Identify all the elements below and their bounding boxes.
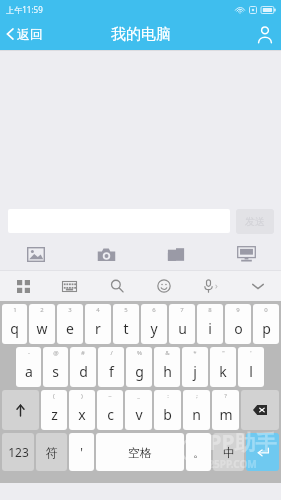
button[interactable]: ' [69, 433, 94, 471]
button[interactable]: Gallery [0, 238, 71, 270]
button[interactable]: & [154, 347, 180, 387]
button[interactable]: 5 [113, 304, 139, 344]
staticText: ) [81, 392, 83, 400]
button[interactable]: ) [69, 390, 95, 430]
staticText: 空格 [128, 445, 152, 460]
button[interactable]: 发送 [236, 209, 274, 234]
button[interactable]: Emoji [140, 271, 187, 301]
button[interactable]: Camera [71, 238, 141, 270]
staticText: x [78, 405, 86, 424]
staticText: j [193, 362, 197, 381]
button[interactable]: @ [43, 347, 68, 387]
staticText: z [51, 405, 58, 424]
staticText: 符 [46, 445, 58, 460]
staticText: t [123, 319, 129, 338]
staticText: f [109, 362, 114, 381]
staticText: a [25, 362, 33, 381]
button[interactable]: 。 [186, 433, 211, 471]
staticText: u [178, 319, 187, 338]
staticText: r [95, 319, 101, 338]
staticText: g [135, 362, 144, 381]
button[interactable]: 空格 [96, 433, 184, 471]
staticText: b [163, 405, 172, 424]
button[interactable]: Contact [249, 22, 281, 47]
button[interactable]: 6 [141, 304, 167, 344]
staticText: 。 [193, 445, 205, 460]
button[interactable]: 中 [213, 433, 244, 471]
button[interactable]: Computer [211, 238, 281, 270]
button[interactable]: Delete [241, 390, 279, 430]
button[interactable]: ' [238, 347, 264, 387]
button[interactable]: Search [93, 271, 140, 301]
staticText: 1 [13, 306, 17, 314]
staticText: 2 [40, 306, 44, 314]
staticText: m [219, 405, 233, 424]
staticText: 中 [223, 445, 235, 460]
button[interactable]: Voice input [187, 271, 234, 301]
staticText: 上午11:59 [6, 4, 43, 15]
button[interactable]: 1 [2, 304, 27, 344]
staticText: v [135, 405, 143, 424]
staticText: 123 [8, 444, 29, 460]
staticText: 0 [264, 306, 268, 314]
button[interactable]: - [16, 347, 41, 387]
button[interactable]: Keyboard layout [46, 271, 93, 301]
staticText: ? [224, 392, 227, 400]
button[interactable]: ? [212, 390, 239, 430]
staticText: q [10, 319, 19, 338]
staticText: 5 [124, 306, 128, 314]
button[interactable]: * [182, 347, 208, 387]
button[interactable]: 返回 [0, 22, 51, 46]
staticText: h [163, 362, 172, 381]
button[interactable]: Hide keyboard [234, 271, 281, 301]
staticText: / [110, 349, 113, 357]
button[interactable]: Enter [246, 433, 279, 471]
staticText: @ [53, 349, 59, 357]
staticText: 我的电脑 [111, 25, 171, 44]
staticText: 25PP.COM [208, 457, 257, 471]
button[interactable]: _ [125, 390, 152, 430]
staticText: 返回 [17, 26, 43, 42]
button[interactable]: " [210, 347, 236, 387]
staticText: ~ [108, 392, 112, 400]
button[interactable]: 2 [29, 304, 55, 344]
staticText: _ [137, 392, 140, 400]
staticText: % [137, 349, 142, 357]
staticText: d [79, 362, 88, 381]
staticText: › [215, 279, 218, 291]
button[interactable]: 8 [197, 304, 223, 344]
button[interactable]: ~ [97, 390, 123, 430]
button[interactable]: 3 [57, 304, 83, 344]
button[interactable]: 符 [36, 433, 67, 471]
button[interactable]: Files [141, 238, 211, 270]
staticText: : [167, 392, 169, 400]
staticText: k [219, 362, 227, 381]
button[interactable]: : [154, 390, 181, 430]
button[interactable]: Shift [2, 390, 39, 430]
staticText: n [192, 405, 201, 424]
staticText: & [165, 349, 170, 357]
button[interactable]: 9 [225, 304, 251, 344]
staticText: i [208, 319, 212, 338]
button[interactable]: 4 [85, 304, 111, 344]
button[interactable]: ; [183, 390, 210, 430]
staticText: e [66, 319, 74, 338]
staticText: - [28, 349, 30, 357]
staticText: s [52, 362, 59, 381]
staticText: w [36, 319, 48, 338]
button[interactable]: Apps [0, 271, 46, 301]
staticText: ' [250, 349, 252, 357]
button[interactable]: ( [41, 390, 67, 430]
staticText: # [81, 349, 85, 357]
staticText: * [193, 349, 197, 357]
button[interactable]: / [98, 347, 124, 387]
button[interactable]: # [70, 347, 96, 387]
button[interactable]: 7 [169, 304, 195, 344]
staticText: PP助手 [208, 428, 277, 457]
button[interactable]: 0 [253, 304, 279, 344]
button[interactable]: % [126, 347, 152, 387]
staticText: c [107, 405, 114, 424]
staticText: 6 [152, 306, 156, 314]
button[interactable]: 123 [2, 433, 34, 471]
